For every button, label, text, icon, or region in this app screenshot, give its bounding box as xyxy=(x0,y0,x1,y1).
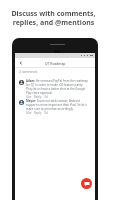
staticText: 3d xyxy=(44,95,48,99)
staticText: Like xyxy=(26,95,32,99)
staticText: Q1 Roadmap xyxy=(45,61,66,65)
staticText: 3d xyxy=(44,111,48,115)
staticText: Reply xyxy=(34,95,42,99)
staticText: 2 comments xyxy=(19,70,38,74)
button[interactable]: New comment xyxy=(81,178,92,189)
staticText: Adam: He removed PayPal from the roadmap… xyxy=(26,79,89,95)
button[interactable]: Adam: He removed PayPal from the roadmap… xyxy=(19,79,89,99)
staticText: Mayur: Given our web context, Android su… xyxy=(26,99,89,111)
button[interactable]: Back xyxy=(17,59,25,67)
staticText: Like xyxy=(26,111,32,115)
staticText: Discuss with comments, replies, and @men… xyxy=(0,9,107,27)
staticText: Reply xyxy=(34,111,42,115)
button[interactable]: Mayur: Given our web context, Android su… xyxy=(19,99,89,115)
